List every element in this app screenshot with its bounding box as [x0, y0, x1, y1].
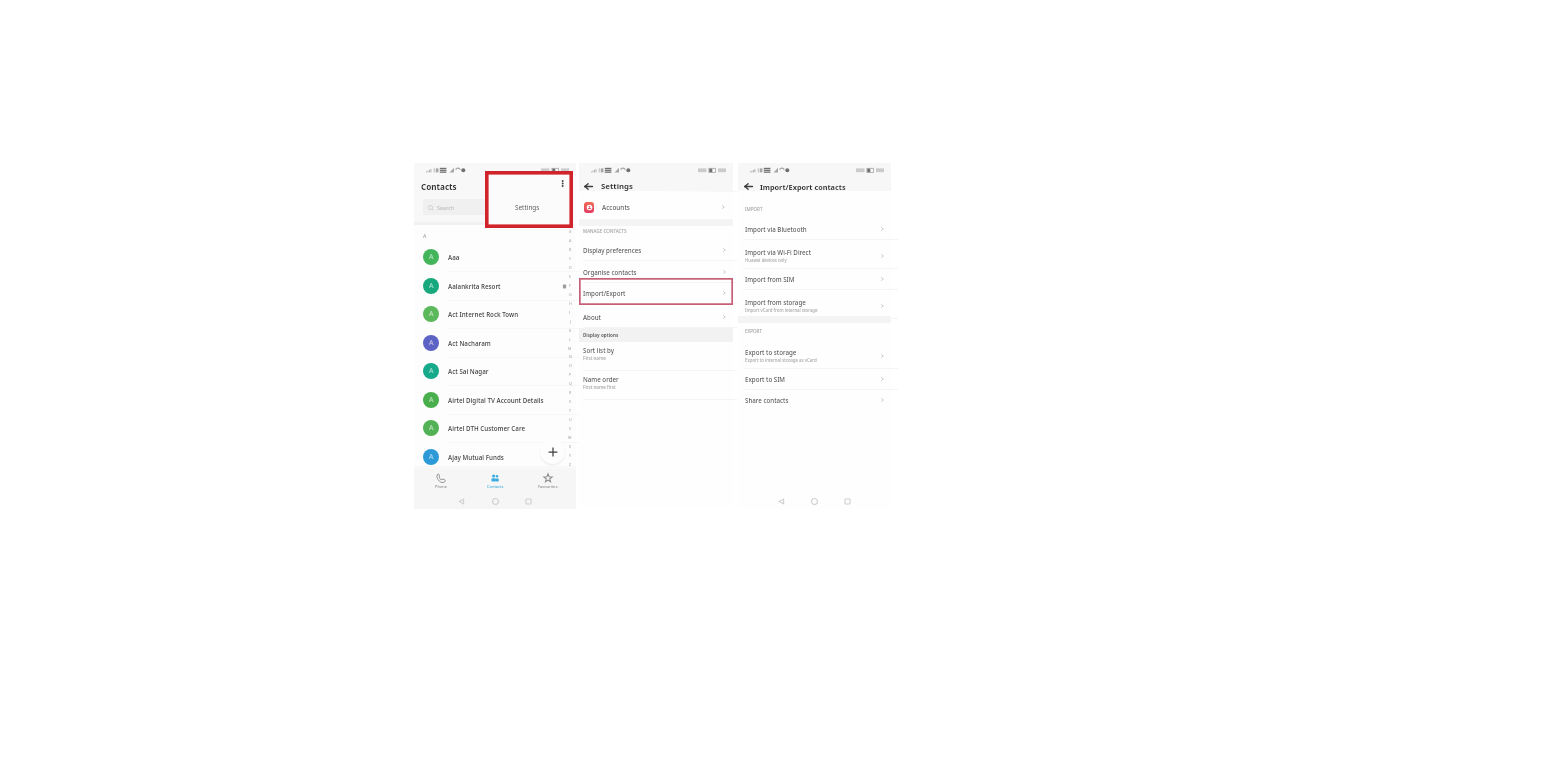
staticText: About — [583, 313, 601, 321]
button[interactable]: Export to SIM — [738, 368, 891, 389]
button[interactable]: Settings — [486, 172, 576, 230]
button[interactable]: Add contact — [540, 439, 565, 464]
staticText: V — [569, 426, 572, 431]
button[interactable]: A — [414, 329, 576, 357]
staticText: A — [429, 338, 434, 348]
staticText: Settings — [515, 203, 540, 212]
staticText: Act Internet Rock Town — [448, 310, 519, 318]
staticText: O — [569, 363, 572, 368]
staticText: G — [569, 292, 572, 297]
button[interactable]: Back — [743, 181, 754, 192]
staticText: IMPORT — [745, 206, 763, 212]
staticText: A — [429, 252, 434, 262]
staticText: Import from storage — [745, 298, 806, 306]
staticText: T — [569, 408, 571, 413]
button[interactable]: Favourites — [531, 469, 565, 493]
button[interactable]: Name order — [579, 375, 733, 399]
button[interactable]: Organise contacts — [579, 261, 733, 282]
staticText: MANAGE CONTACTS — [583, 228, 627, 234]
staticText: D — [569, 265, 572, 270]
staticText: M — [568, 346, 572, 351]
staticText: Export to storage — [745, 348, 797, 356]
staticText: A — [429, 366, 434, 376]
staticText: Airtel DTH Customer Care — [448, 424, 526, 432]
button[interactable]: More options — [556, 177, 568, 189]
staticText: Contacts — [487, 484, 504, 489]
staticText: J — [570, 319, 571, 324]
button[interactable]: Import via Bluetooth — [738, 218, 891, 239]
button[interactable]: A — [414, 414, 576, 442]
staticText: A — [429, 281, 434, 291]
button[interactable]: Share contacts — [738, 389, 891, 410]
staticText: Name order — [583, 375, 619, 383]
staticText: Huawei devices only — [745, 257, 787, 263]
button[interactable]: About — [579, 306, 733, 327]
staticText: A — [569, 238, 572, 243]
staticText: Import via Wi-Fi Direct — [745, 248, 812, 256]
staticText: S — [569, 399, 571, 404]
staticText: X — [569, 444, 572, 449]
staticText: Import/Export contacts — [760, 182, 846, 192]
button[interactable]: Recents — [523, 496, 534, 507]
button[interactable]: Recents — [842, 496, 853, 507]
staticText: Act Nacharam — [448, 339, 491, 347]
staticText: Display options — [583, 332, 619, 338]
staticText: I — [569, 310, 571, 315]
button[interactable]: Sort list by — [579, 346, 733, 370]
staticText: A — [429, 423, 434, 433]
staticText: Y — [569, 453, 572, 458]
staticText: A — [423, 232, 427, 239]
button[interactable]: A — [414, 357, 576, 385]
staticText: K — [569, 328, 572, 333]
button[interactable]: Home — [809, 496, 820, 507]
staticText: EXPORT — [745, 328, 763, 334]
staticText: Aalankrita Resort — [448, 282, 501, 290]
staticText: P — [569, 372, 572, 377]
staticText: Act Sai Nagar — [448, 367, 489, 375]
button[interactable]: A — [414, 443, 576, 471]
staticText: Share contacts — [745, 396, 789, 404]
staticText: F — [569, 283, 571, 288]
staticText: N — [569, 354, 572, 359]
button[interactable]: Contacts — [478, 469, 512, 493]
staticText: Ajay Mutual Funds — [448, 453, 504, 461]
staticText: Export to SIM — [745, 375, 786, 383]
staticText: Q — [569, 381, 572, 386]
button[interactable]: Accounts — [579, 196, 733, 218]
button[interactable]: Back — [776, 496, 787, 507]
staticText: A — [429, 452, 434, 462]
staticText: Favourites — [538, 484, 558, 489]
button[interactable]: Import/Export — [579, 282, 733, 303]
staticText: R — [569, 390, 572, 395]
staticText: Import via Bluetooth — [745, 225, 807, 233]
button[interactable]: Home — [490, 496, 501, 507]
staticText: B — [569, 247, 572, 252]
staticText: Airtel Digital TV Account Details — [448, 396, 544, 404]
staticText: A — [429, 309, 434, 319]
staticText: Z — [569, 462, 572, 467]
button[interactable]: Display preferences — [579, 239, 733, 260]
staticText: A — [429, 395, 434, 405]
staticText: Search — [437, 204, 455, 211]
staticText: First name — [583, 355, 606, 361]
button[interactable]: A — [414, 272, 576, 300]
staticText: Organise contacts — [583, 268, 637, 276]
staticText: # — [569, 229, 572, 234]
button[interactable]: A — [414, 300, 576, 328]
button[interactable]: Back — [456, 496, 467, 507]
button[interactable]: Import from SIM — [738, 268, 891, 289]
button[interactable]: Export to storage — [738, 343, 891, 368]
button[interactable]: Phone — [424, 469, 458, 493]
staticText: Display preferences — [583, 246, 642, 254]
staticText: Phone — [435, 484, 448, 489]
button[interactable]: A — [414, 386, 576, 414]
staticText: Import vCard from internal storage — [745, 307, 818, 313]
button[interactable]: Import from storage — [738, 293, 891, 318]
staticText: L — [569, 337, 571, 342]
button[interactable]: Back — [583, 181, 594, 192]
button[interactable]: Import via Wi-Fi Direct — [738, 243, 891, 268]
staticText: H — [569, 301, 572, 306]
button[interactable]: Search — [423, 199, 569, 215]
staticText: First name first — [583, 384, 616, 390]
button[interactable]: A — [414, 243, 576, 271]
